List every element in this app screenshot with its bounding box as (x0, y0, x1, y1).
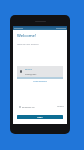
button[interactable]: Email id (17, 66, 63, 79)
staticText: Login to your account (17, 43, 39, 46)
button[interactable]: Remember me (19, 106, 35, 108)
staticText: Forgot password (13, 80, 67, 82)
button[interactable]: LOGIN (17, 115, 63, 119)
staticText: name@mail (25, 73, 37, 76)
button[interactable]: Forgot? (57, 105, 64, 108)
staticText: Remember me (22, 106, 35, 108)
staticText: Email id (25, 68, 32, 71)
staticText: LOGIN (37, 116, 43, 118)
staticText: Welcome! (17, 33, 37, 39)
